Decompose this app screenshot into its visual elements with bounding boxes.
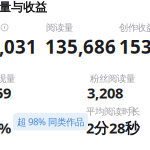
staticText: 59 xyxy=(0,83,11,102)
staticText: 3,208 xyxy=(87,83,123,102)
staticText: 阅读量 xyxy=(46,22,73,33)
staticText: 创作收益 xyxy=(119,22,150,33)
staticText: 153.2 xyxy=(119,34,150,59)
staticText: 平均阅读时长 xyxy=(86,106,140,117)
staticText: 量与收益 xyxy=(0,0,47,15)
staticText: 2分28秒 xyxy=(86,118,140,137)
staticText: 现量 xyxy=(0,73,15,84)
staticText: 粉丝阅读量 xyxy=(90,73,135,84)
staticText: 超 98% 同类作品 xyxy=(17,115,84,128)
staticText: 135,686 xyxy=(45,34,116,59)
staticText: % xyxy=(0,118,11,137)
staticText: ,031 xyxy=(0,34,37,59)
